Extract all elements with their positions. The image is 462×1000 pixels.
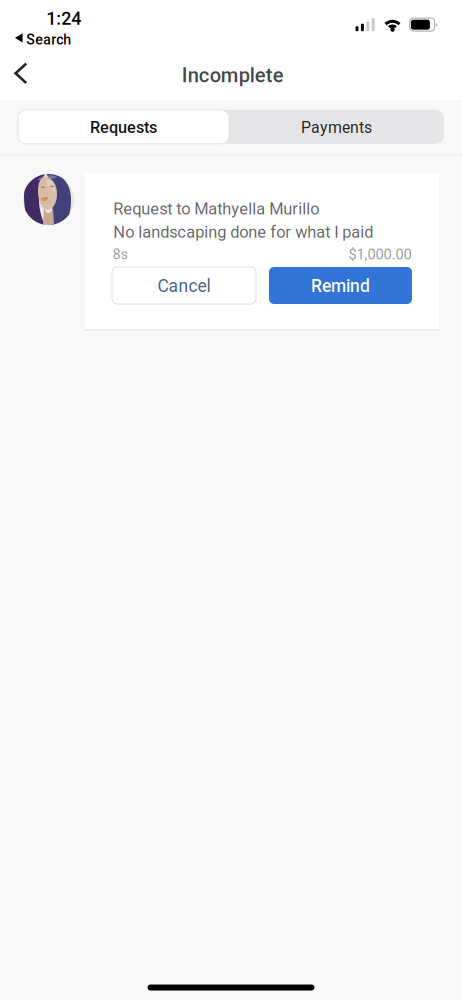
staticText: Incomplete: [182, 64, 284, 87]
button[interactable]: Remind: [269, 267, 412, 304]
staticText: Request to Mathyella Murillo: [113, 199, 319, 218]
staticText: Payments: [301, 118, 372, 137]
button[interactable]: Back: [0, 53, 44, 95]
staticText: Requests: [90, 118, 157, 137]
staticText: Cancel: [157, 276, 210, 296]
button[interactable]: Cancel: [112, 267, 256, 304]
button[interactable]: Payments: [229, 110, 444, 144]
staticText: 1:24: [46, 8, 81, 29]
staticText: 8s: [113, 246, 128, 263]
staticText: Search: [26, 31, 71, 48]
staticText: Remind: [311, 276, 370, 296]
staticText: $1,000.00: [348, 246, 411, 263]
button[interactable]: Requests: [18, 110, 229, 144]
staticText: No landscaping done for what I paid: [113, 223, 373, 242]
